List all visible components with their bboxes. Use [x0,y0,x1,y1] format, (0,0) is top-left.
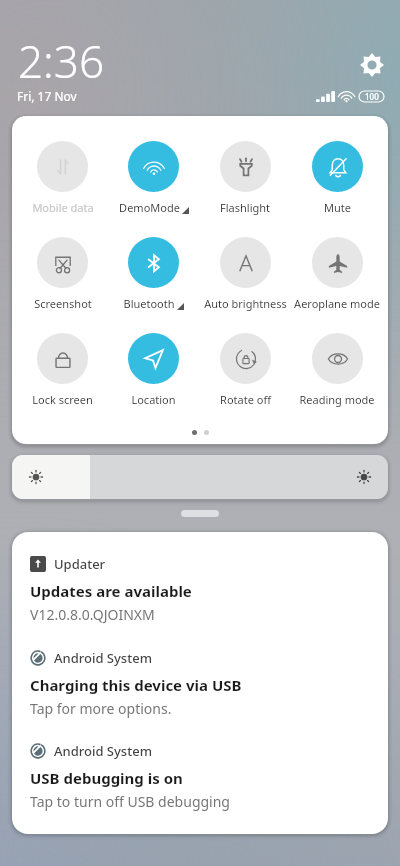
staticText: Location [131,392,176,407]
staticText: Tap for more options. [30,699,172,718]
button[interactable]: Settings [360,53,384,77]
staticText: Mobile data [32,200,94,215]
button[interactable]: Android System [30,649,372,718]
staticText: 100 [365,91,379,102]
button[interactable]: Flashlight [199,141,291,215]
button[interactable]: Location [108,333,199,407]
button[interactable]: Mobile data [17,141,108,215]
staticText: 2:36 [18,31,105,91]
button[interactable]: Screenshot [17,237,108,311]
button[interactable]: Android System [30,742,372,811]
staticText: Lock screen [32,392,93,407]
button[interactable]: Lock screen [17,333,108,407]
staticText: Tap to turn off USB debugging [30,792,230,811]
staticText: Android System [54,649,152,667]
staticText: USB debugging is on [30,768,183,788]
button[interactable]: DemoMode [108,141,199,215]
staticText: Flashlight [220,200,270,215]
staticText: Screenshot [34,296,92,311]
staticText: Aeroplane mode [294,296,380,311]
staticText: Auto brightness [204,296,287,311]
button[interactable]: Auto brightness [199,237,291,311]
button[interactable]: Rotate off [199,333,291,407]
staticText: Fri, 17 Nov [17,88,77,104]
staticText: V12.0.8.0.QJOINXM [30,605,155,624]
button[interactable]: Aeroplane mode [291,237,383,311]
button[interactable]: Reading mode [291,333,383,407]
button[interactable]: Updater [30,555,372,624]
staticText: Updates are available [30,581,192,601]
staticText: Charging this device via USB [30,675,242,695]
staticText: Android System [54,742,152,760]
button[interactable]: Mute [291,141,383,215]
staticText: Updater [54,555,106,573]
staticText: Rotate off [220,392,271,407]
staticText: Reading mode [299,392,375,407]
staticText: DemoMode [119,200,180,215]
button[interactable]: Bluetooth [108,237,199,311]
button[interactable]: Brightness [12,455,388,499]
staticText: Mute [324,200,351,215]
staticText: Bluetooth [123,296,175,311]
